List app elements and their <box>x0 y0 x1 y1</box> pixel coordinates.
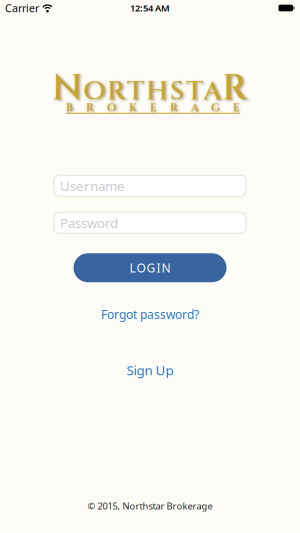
staticText: Carrier <box>5 1 39 15</box>
staticText: LOGIN <box>129 260 170 276</box>
staticText: BROKERAGE <box>66 100 240 115</box>
staticText: R <box>222 64 248 112</box>
staticText: ORTHSTA <box>83 73 222 109</box>
button[interactable]: Sign Up <box>126 361 173 379</box>
button[interactable]: Forgot password? <box>101 306 199 322</box>
button[interactable]: LOGIN <box>73 253 226 282</box>
staticText: Password <box>60 214 118 232</box>
staticText: Username <box>60 177 125 195</box>
button[interactable]: Password <box>54 212 246 233</box>
button[interactable]: Username <box>54 175 246 196</box>
staticText: © 2015, Northstar Brokerage <box>87 500 212 512</box>
staticText: N <box>52 64 83 112</box>
staticText: 12:54 AM <box>130 2 170 14</box>
staticText: Sign Up <box>126 361 173 379</box>
staticText: Forgot password? <box>101 306 199 322</box>
